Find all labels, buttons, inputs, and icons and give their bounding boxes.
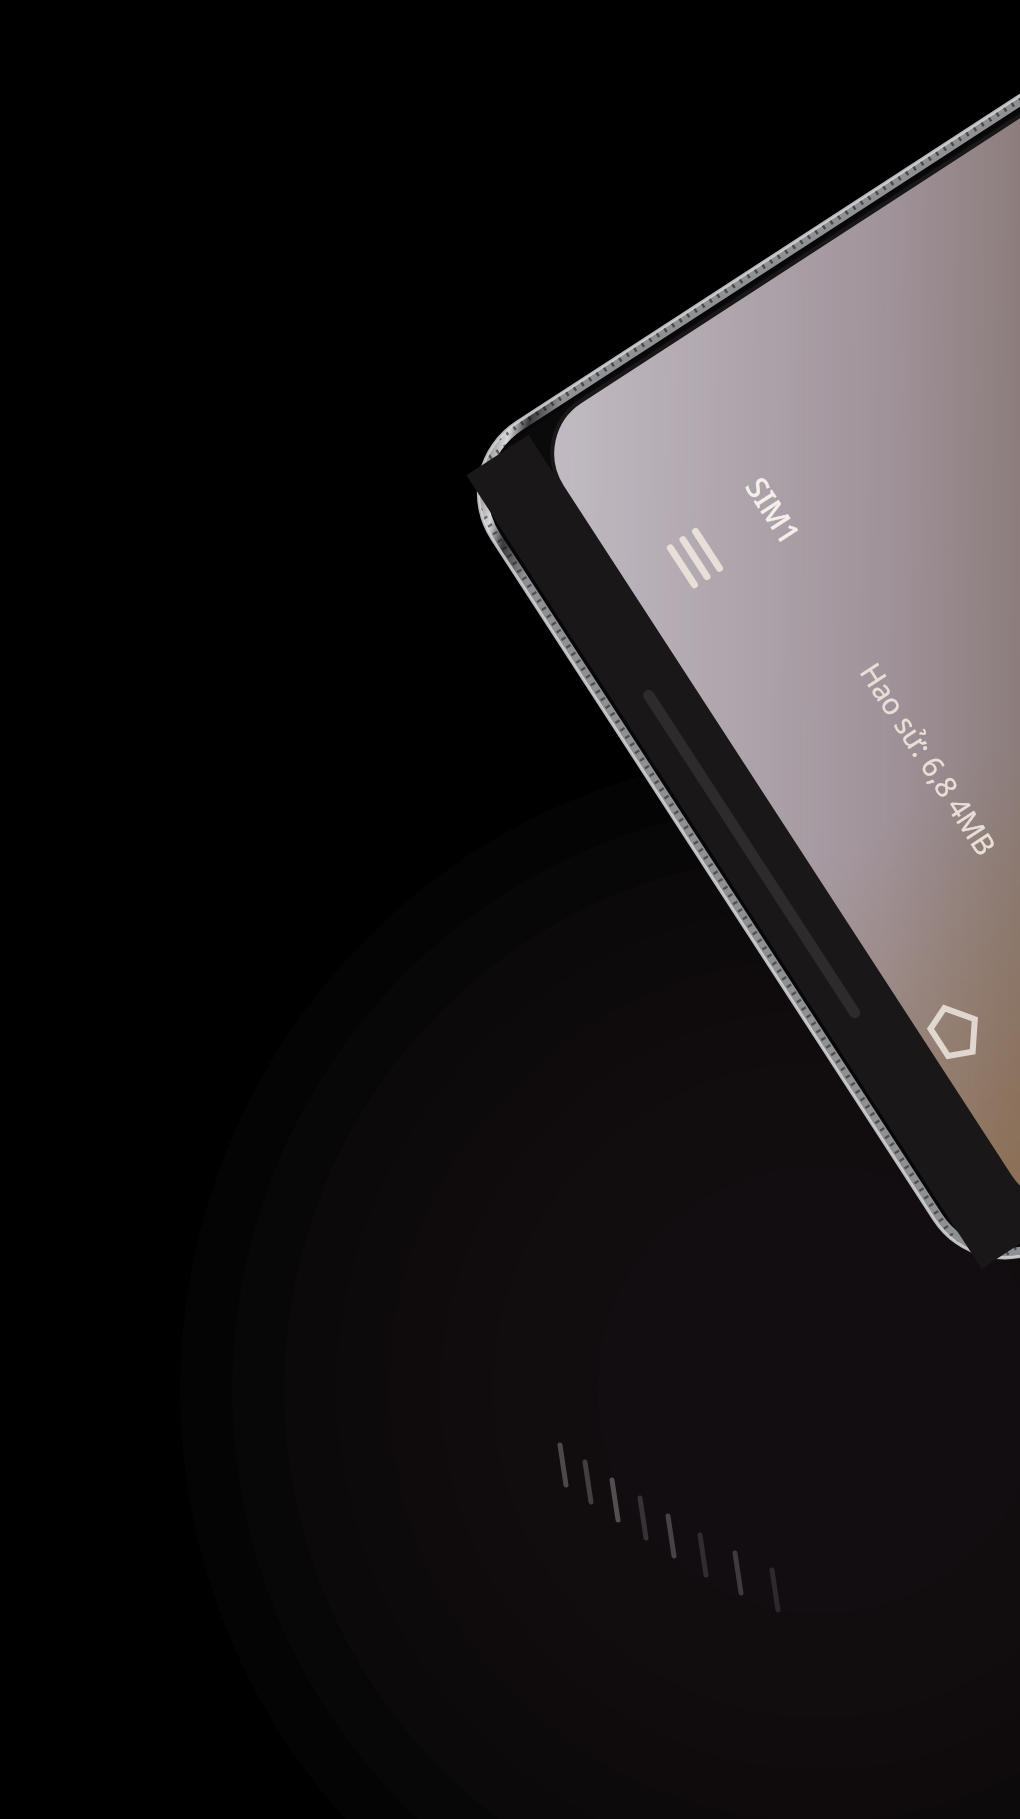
- button[interactable]: Tilted phone showing data usage screen: [0, 0, 1020, 1819]
